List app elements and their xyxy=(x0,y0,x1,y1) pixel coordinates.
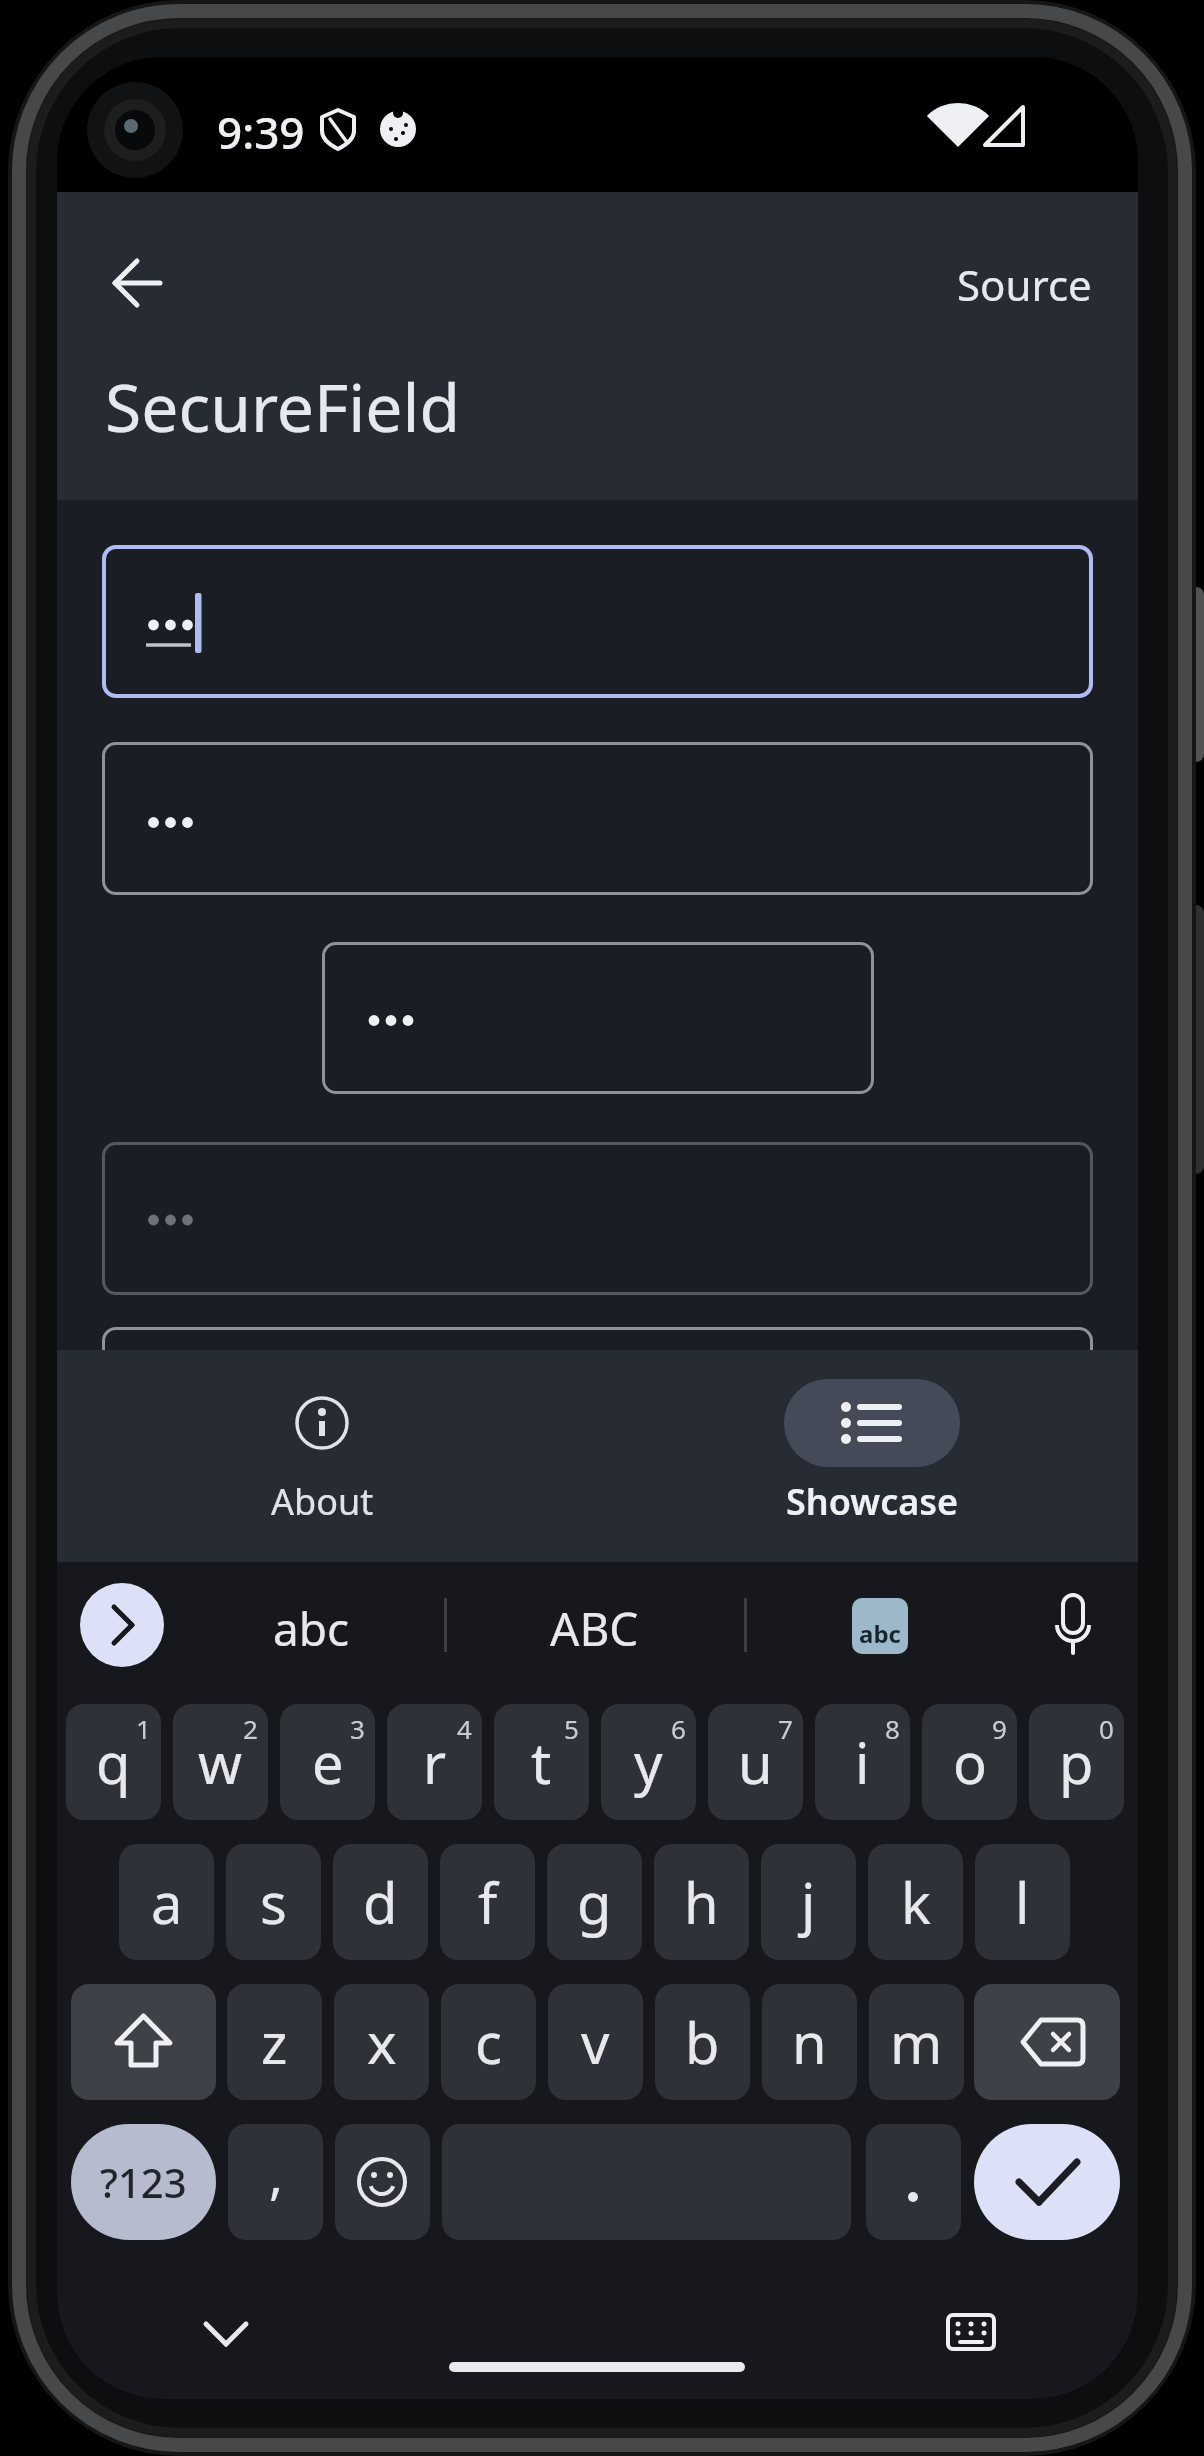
button[interactable] xyxy=(102,545,1093,698)
button[interactable]: k xyxy=(868,1844,963,1960)
button[interactable]: g xyxy=(547,1844,642,1960)
staticText: a xyxy=(151,1864,183,1940)
staticText: w xyxy=(198,1724,243,1800)
button[interactable] xyxy=(184,2292,268,2376)
staticText: Source xyxy=(957,256,1092,313)
button[interactable]: t xyxy=(494,1704,589,1820)
button[interactable]: y xyxy=(601,1704,696,1820)
staticText: 3 xyxy=(350,1711,365,1746)
staticText: i xyxy=(855,1724,870,1800)
staticText: ABC xyxy=(550,1597,639,1653)
staticText: 0 xyxy=(1099,1711,1114,1746)
staticText: g xyxy=(577,1864,612,1940)
button[interactable] xyxy=(102,1142,1093,1295)
staticText: z xyxy=(261,2004,288,2080)
staticText: j xyxy=(801,1864,816,1940)
button[interactable] xyxy=(335,2124,430,2240)
staticText: SecureField xyxy=(105,361,461,451)
button[interactable]: r xyxy=(387,1704,482,1820)
button[interactable]: p xyxy=(1029,1704,1124,1820)
button[interactable]: s xyxy=(226,1844,321,1960)
staticText: x xyxy=(367,2004,397,2080)
staticText: s xyxy=(260,1864,287,1940)
button[interactable]: z xyxy=(227,1984,322,2100)
button[interactable]: d xyxy=(333,1844,428,1960)
staticText: y xyxy=(634,1724,663,1800)
button[interactable]: o xyxy=(922,1704,1017,1820)
button[interactable] xyxy=(71,1984,216,2100)
staticText: l xyxy=(1015,1864,1030,1940)
button[interactable] xyxy=(80,1583,164,1667)
button[interactable] xyxy=(93,253,183,313)
staticText: r xyxy=(423,1724,447,1800)
staticText: v xyxy=(581,2004,610,2080)
button[interactable]: , xyxy=(228,2124,323,2240)
staticText: 9:39 xyxy=(217,102,305,158)
staticText: n xyxy=(792,2004,827,2080)
button[interactable]: h xyxy=(654,1844,749,1960)
staticText: q xyxy=(96,1724,131,1800)
staticText: m xyxy=(890,2004,943,2080)
button[interactable]: a xyxy=(119,1844,214,1960)
button[interactable]: j xyxy=(761,1844,856,1960)
staticText: k xyxy=(901,1864,931,1940)
staticText: u xyxy=(738,1724,773,1800)
button[interactable] xyxy=(102,742,1093,895)
button[interactable]: Source xyxy=(892,255,1092,313)
staticText: 7 xyxy=(778,1711,793,1746)
button[interactable] xyxy=(322,942,874,1094)
button[interactable]: x xyxy=(334,1984,429,2100)
button[interactable]: m xyxy=(869,1984,964,2100)
staticText: 1 xyxy=(136,1711,151,1746)
button[interactable]: f xyxy=(440,1844,535,1960)
button[interactable] xyxy=(784,1379,960,1467)
button[interactable]: abc xyxy=(852,1598,908,1654)
staticText: e xyxy=(312,1724,344,1800)
button[interactable]: b xyxy=(655,1984,750,2100)
button[interactable]: v xyxy=(548,1984,643,2100)
staticText: t xyxy=(531,1724,552,1800)
staticText: abc xyxy=(273,1597,350,1653)
button[interactable] xyxy=(866,2124,961,2240)
button[interactable]: n xyxy=(762,1984,857,2100)
staticText: c xyxy=(475,2004,502,2080)
button[interactable]: w xyxy=(173,1704,268,1820)
button[interactable] xyxy=(929,2292,1013,2376)
staticText: f xyxy=(478,1864,498,1940)
staticText: 5 xyxy=(564,1711,579,1746)
button[interactable]: c xyxy=(441,1984,536,2100)
button[interactable]: ?123 xyxy=(71,2124,216,2240)
staticText: 9 xyxy=(992,1711,1007,1746)
staticText: About xyxy=(271,1477,374,1526)
staticText: ?123 xyxy=(100,2155,187,2209)
staticText: d xyxy=(363,1864,398,1940)
staticText: 4 xyxy=(457,1711,472,1746)
button[interactable]: l xyxy=(975,1844,1070,1960)
staticText: h xyxy=(684,1864,719,1940)
staticText: abc xyxy=(859,1617,901,1650)
staticText: , xyxy=(269,2138,283,2209)
button[interactable]: e xyxy=(280,1704,375,1820)
button[interactable]: u xyxy=(708,1704,803,1820)
button[interactable] xyxy=(974,1984,1120,2100)
button[interactable]: i xyxy=(815,1704,910,1820)
button[interactable]: q xyxy=(66,1704,161,1820)
staticText: b xyxy=(685,2004,720,2080)
staticText: o xyxy=(953,1724,987,1800)
staticText: Showcase xyxy=(786,1477,959,1526)
staticText: 2 xyxy=(243,1711,258,1746)
staticText: p xyxy=(1059,1724,1094,1800)
staticText: 8 xyxy=(885,1711,900,1746)
button[interactable]: abc xyxy=(231,1597,391,1653)
button[interactable]: ABC xyxy=(514,1597,674,1653)
button[interactable] xyxy=(172,1367,472,1547)
staticText: 6 xyxy=(671,1711,686,1746)
button[interactable] xyxy=(974,2124,1120,2240)
button[interactable] xyxy=(1031,1583,1115,1667)
